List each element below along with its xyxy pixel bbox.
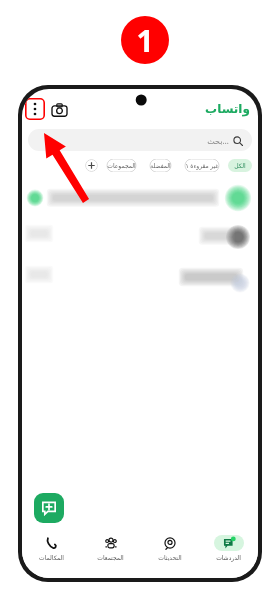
- button[interactable]: Camera: [50, 100, 68, 118]
- button[interactable]: المفضلة: [145, 159, 176, 172]
- staticText: المكالمات: [39, 554, 64, 561]
- button[interactable]: الدردشات: [199, 530, 258, 578]
- button[interactable]: More options: [27, 98, 43, 120]
- button[interactable]: Add filter: [85, 159, 98, 172]
- button[interactable]: المجموعات: [102, 159, 141, 172]
- staticText: التحديثات: [158, 554, 182, 561]
- staticText: المفضلة: [150, 162, 171, 169]
- button[interactable]: التحديثات: [140, 530, 199, 578]
- button[interactable]: المجتمعات: [81, 530, 140, 578]
- button[interactable]: الكل: [228, 159, 252, 172]
- staticText: بحث…: [207, 135, 229, 146]
- button[interactable]: بحث…: [28, 129, 252, 151]
- button[interactable]: المكالمات: [22, 530, 81, 578]
- staticText: المجتمعات: [97, 554, 124, 561]
- staticText: الدردشات: [216, 554, 241, 561]
- button[interactable]: غير مقروءة ١: [180, 159, 224, 172]
- staticText: 1: [136, 20, 154, 61]
- button[interactable]: New chat: [34, 493, 64, 523]
- staticText: المجموعات: [107, 162, 136, 169]
- staticText: واتساب: [205, 102, 250, 116]
- staticText: غير مقروءة ١: [185, 162, 219, 170]
- staticText: الكل: [234, 162, 246, 169]
